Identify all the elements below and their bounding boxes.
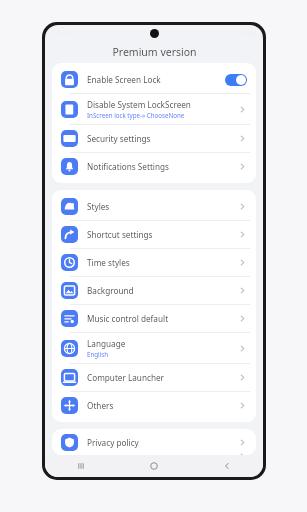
button[interactable]: Back (212, 455, 242, 477)
button[interactable]: Computer Launcher (52, 364, 256, 392)
button[interactable]: Notifications Settings (52, 153, 256, 180)
button[interactable]: Enable Screen Lock toggle (225, 74, 247, 86)
staticText: Computer Launcher (87, 372, 164, 383)
staticText: Music control default (87, 313, 169, 324)
staticText: InScreen lock type-» ChooseNone (87, 111, 185, 119)
staticText: Privacy policy (87, 437, 139, 448)
staticText: Disable System LockScreen (87, 99, 191, 110)
staticText: Security settings (87, 133, 151, 144)
button[interactable]: Music control default (52, 305, 256, 333)
staticText: Background (87, 285, 134, 296)
button[interactable]: Home (139, 455, 169, 477)
staticText: Shortcut settings (87, 229, 153, 240)
staticText: Others (87, 400, 114, 411)
button[interactable]: Security settings (52, 125, 256, 153)
staticText: Notifications Settings (87, 161, 169, 172)
button[interactable]: Background (52, 277, 256, 305)
button[interactable]: Shortcut settings (52, 221, 256, 249)
button[interactable]: Recents (66, 455, 96, 477)
staticText: Time styles (87, 257, 130, 268)
button[interactable]: Time styles (52, 249, 256, 277)
button[interactable]: Enable Screen Lock (52, 66, 256, 94)
button[interactable]: Privacy policy (52, 432, 256, 452)
staticText: Styles (87, 201, 110, 212)
staticText: Enable Screen Lock (87, 74, 161, 85)
button[interactable]: Disable System LockScreen (52, 94, 256, 125)
staticText: Premium version (112, 45, 197, 59)
staticText: English (87, 350, 109, 358)
button[interactable]: Styles (52, 193, 256, 221)
button[interactable]: Language (52, 333, 256, 364)
staticText: Language (87, 338, 126, 349)
button[interactable]: Others (52, 392, 256, 419)
